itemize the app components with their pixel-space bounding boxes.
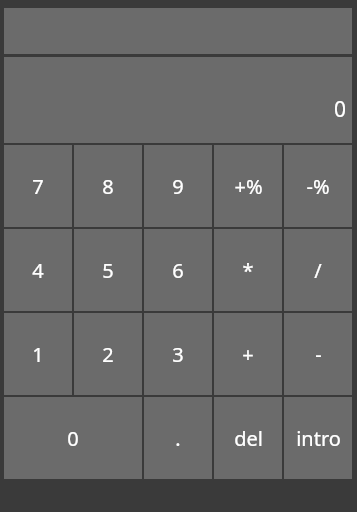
staticText: -% bbox=[306, 173, 330, 200]
staticText: * bbox=[242, 257, 254, 284]
staticText: 8 bbox=[102, 173, 114, 200]
button[interactable]: +% bbox=[214, 145, 282, 227]
button[interactable]: del bbox=[214, 397, 282, 479]
button[interactable]: 6 bbox=[144, 229, 212, 311]
button[interactable]: 5 bbox=[74, 229, 142, 311]
button[interactable]: 2 bbox=[74, 313, 142, 395]
staticText: 0 bbox=[67, 425, 79, 452]
staticText: 0 bbox=[333, 95, 346, 124]
staticText: 9 bbox=[172, 173, 184, 200]
staticText: + bbox=[242, 341, 254, 368]
button[interactable]: / bbox=[284, 229, 352, 311]
staticText: 4 bbox=[32, 257, 44, 284]
staticText: 1 bbox=[32, 341, 44, 368]
staticText: 3 bbox=[172, 341, 184, 368]
button[interactable]: 3 bbox=[144, 313, 212, 395]
button[interactable]: 8 bbox=[74, 145, 142, 227]
button[interactable]: 7 bbox=[4, 145, 72, 227]
staticText: / bbox=[314, 257, 322, 284]
button[interactable]: intro bbox=[284, 397, 352, 479]
button[interactable]: 4 bbox=[4, 229, 72, 311]
button[interactable]: 1 bbox=[4, 313, 72, 395]
staticText: del bbox=[234, 425, 263, 452]
button[interactable]: - bbox=[284, 313, 352, 395]
staticText: - bbox=[315, 341, 322, 368]
staticText: +% bbox=[234, 173, 263, 200]
button[interactable]: 9 bbox=[144, 145, 212, 227]
button[interactable]: + bbox=[214, 313, 282, 395]
button[interactable]: -% bbox=[284, 145, 352, 227]
button[interactable]: * bbox=[214, 229, 282, 311]
staticText: 2 bbox=[102, 341, 114, 368]
staticText: . bbox=[175, 425, 181, 452]
button[interactable]: 0 bbox=[4, 397, 142, 479]
button[interactable]: 0 bbox=[4, 57, 352, 143]
staticText: 5 bbox=[102, 257, 114, 284]
button[interactable]: . bbox=[144, 397, 212, 479]
staticText: 7 bbox=[32, 173, 44, 200]
staticText: intro bbox=[296, 425, 341, 452]
staticText: 6 bbox=[172, 257, 184, 284]
